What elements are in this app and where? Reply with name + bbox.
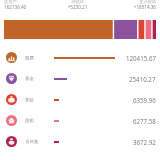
button[interactable]: 股票 [0,47,160,68]
button[interactable]: 当日系 [0,131,160,152]
staticText: 25410.27 [129,75,156,83]
staticText: 存款 [25,97,34,103]
staticText: 6277.58 [133,117,156,125]
staticText: 3672.92 [133,138,156,146]
staticText: 日收益 [52,0,103,4]
staticText: +5230.21 [52,4,103,10]
staticText: 股票 [25,55,34,61]
staticText: 基金 [25,76,34,82]
staticText: 6359.96 [133,96,156,104]
button[interactable]: 存款 [0,89,160,110]
button[interactable]: 基金 [0,68,160,89]
staticText: +18514.36 [103,4,156,10]
button[interactable]: 房租 [0,110,160,131]
staticText: 总资产 [4,0,52,4]
staticText: 房租 [25,118,34,124]
staticText: 162136.40 [4,4,52,10]
staticText: 当日系 [25,139,39,145]
staticText: 120415.67 [126,54,156,62]
staticText: 累计收益 [103,0,156,4]
